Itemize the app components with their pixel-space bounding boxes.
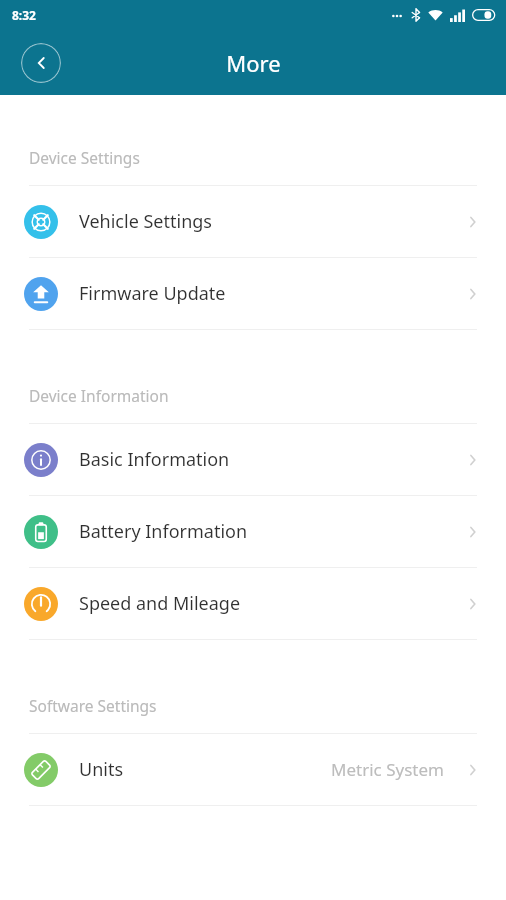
staticText: Basic Information (79, 447, 230, 472)
staticText: Device Information (29, 385, 169, 406)
button[interactable]: Speed and Mileage (0, 568, 506, 639)
staticText: 8:32 (12, 7, 36, 23)
staticText: Software Settings (29, 695, 157, 716)
staticText: Metric System (331, 758, 444, 781)
button[interactable]: Back (21, 43, 61, 83)
staticText: Battery Information (79, 519, 248, 544)
staticText: Vehicle Settings (79, 209, 212, 234)
staticText: More (226, 48, 281, 78)
button[interactable]: Vehicle Settings (0, 186, 506, 257)
button[interactable]: Firmware Update (0, 258, 506, 329)
button[interactable]: Battery Information (0, 496, 506, 567)
button[interactable]: Units (0, 734, 506, 805)
button[interactable]: Basic Information (0, 424, 506, 495)
staticText: Firmware Update (79, 281, 226, 306)
staticText: Units (79, 757, 124, 782)
staticText: Device Settings (29, 147, 140, 168)
staticText: Speed and Mileage (79, 591, 241, 616)
